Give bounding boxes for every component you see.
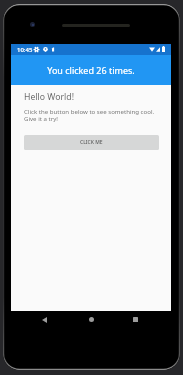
staticText: 10:45 xyxy=(17,46,33,54)
staticText: You clicked 26 times. xyxy=(47,64,135,76)
staticText: Hello World! xyxy=(24,91,75,103)
button[interactable]: CLICK ME xyxy=(24,135,159,150)
button[interactable]: Recent apps xyxy=(124,311,146,334)
staticText: CLICK ME xyxy=(80,139,103,146)
button[interactable]: Back xyxy=(33,311,55,334)
staticText: Click the button below to see something … xyxy=(24,107,155,123)
button[interactable]: Home xyxy=(80,311,102,334)
